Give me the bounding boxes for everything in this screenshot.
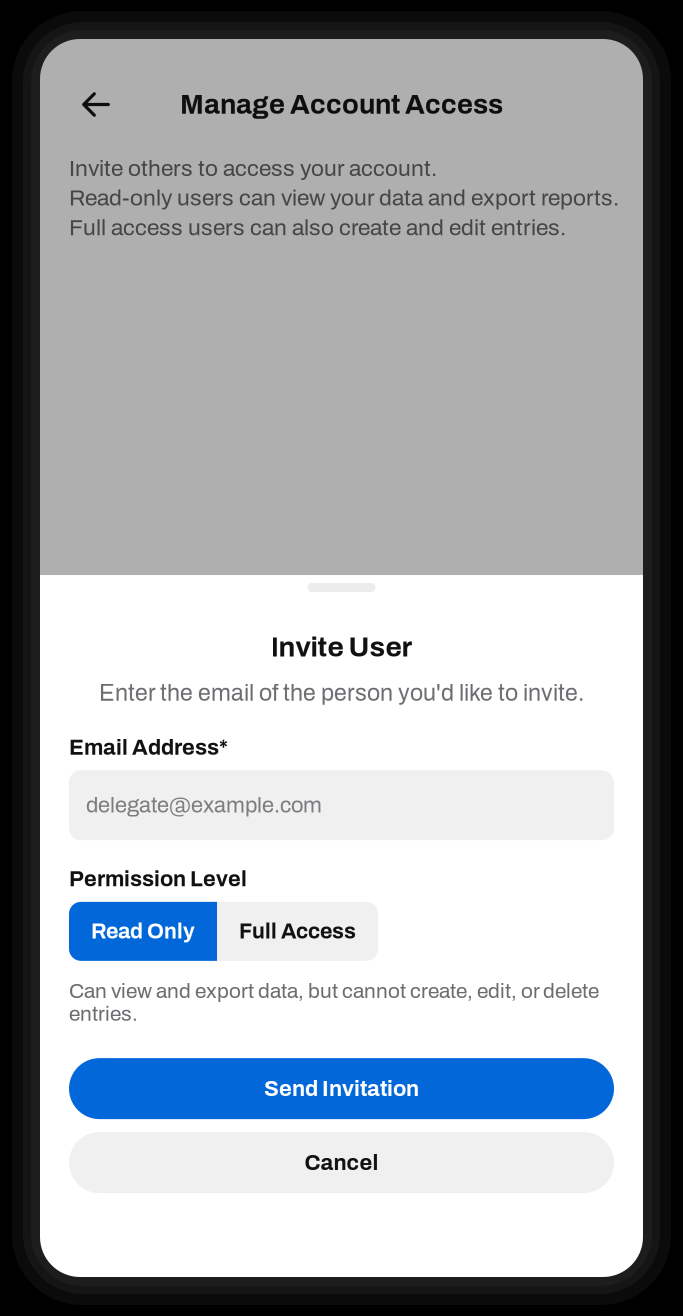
staticText: Invite others to access your account. xyxy=(69,156,437,181)
button[interactable]: Read Only xyxy=(69,902,217,961)
staticText: Read Only xyxy=(91,920,195,943)
button[interactable]: Send Invitation xyxy=(69,1058,614,1119)
staticText: Permission Level xyxy=(69,867,247,891)
staticText: Email Address* xyxy=(69,736,228,759)
staticText: Full Access xyxy=(239,920,356,943)
button[interactable]: Back xyxy=(60,90,118,119)
staticText: Read-only users can view your data and e… xyxy=(69,186,619,210)
staticText: Send Invitation xyxy=(264,1077,419,1100)
staticText: Invite User xyxy=(270,632,412,662)
staticText: Can view and export data, but cannot cre… xyxy=(69,980,599,1025)
staticText: Enter the email of the person you'd like… xyxy=(99,680,584,706)
staticText: Cancel xyxy=(304,1151,378,1174)
staticText: Manage Account Access xyxy=(180,90,503,119)
button[interactable]: Cancel xyxy=(69,1132,614,1193)
staticText: Full access users can also create and ed… xyxy=(69,215,566,240)
button[interactable]: Full Access xyxy=(217,902,378,961)
staticText: delegate@example.com xyxy=(86,793,322,817)
